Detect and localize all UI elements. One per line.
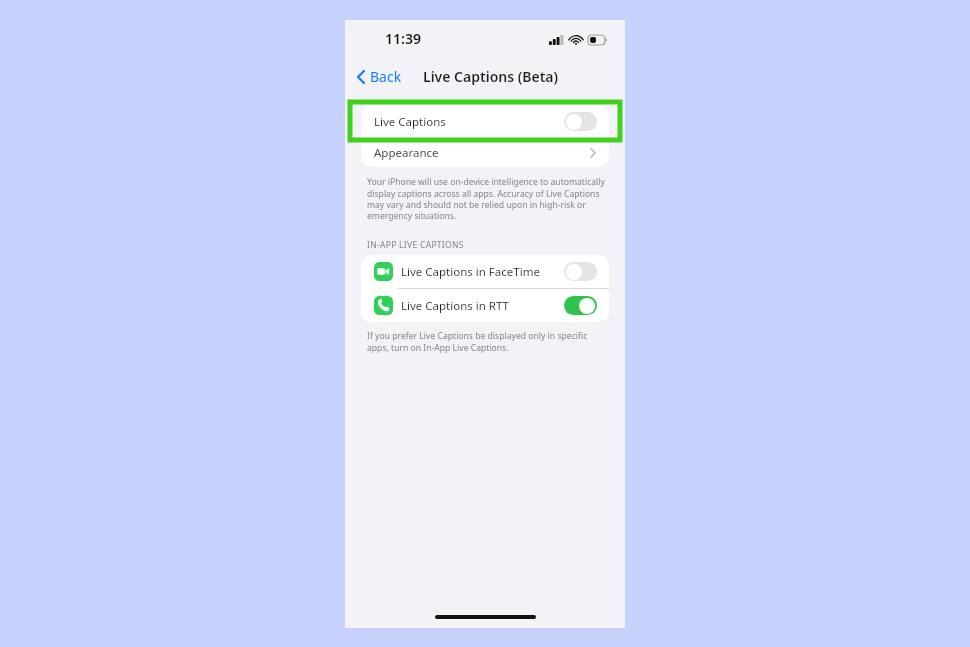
button[interactable]: Live Captions	[361, 105, 609, 138]
staticText: 11:39	[385, 29, 421, 48]
staticText: Live Captions in FaceTime	[401, 264, 540, 280]
staticText: If you prefer Live Captions be displayed…	[367, 330, 605, 353]
button[interactable]: Off	[564, 262, 597, 281]
staticText: Live Captions	[374, 114, 446, 130]
button[interactable]: Live Captions in FaceTime	[361, 255, 609, 288]
button[interactable]: On	[564, 296, 597, 315]
staticText: IN-APP LIVE CAPTIONS	[367, 239, 464, 251]
staticText: Live Captions in RTT	[401, 298, 510, 314]
button[interactable]: Back	[354, 63, 405, 90]
staticText: Back	[370, 67, 402, 86]
button[interactable]: Live Captions in RTT	[361, 289, 609, 322]
button[interactable]: Off	[564, 112, 597, 131]
staticText: Live Captions (Beta)	[423, 67, 559, 86]
staticText: Your iPhone will use on-device intellige…	[367, 176, 605, 221]
button[interactable]: Appearance	[361, 139, 609, 167]
staticText: Appearance	[374, 145, 439, 161]
